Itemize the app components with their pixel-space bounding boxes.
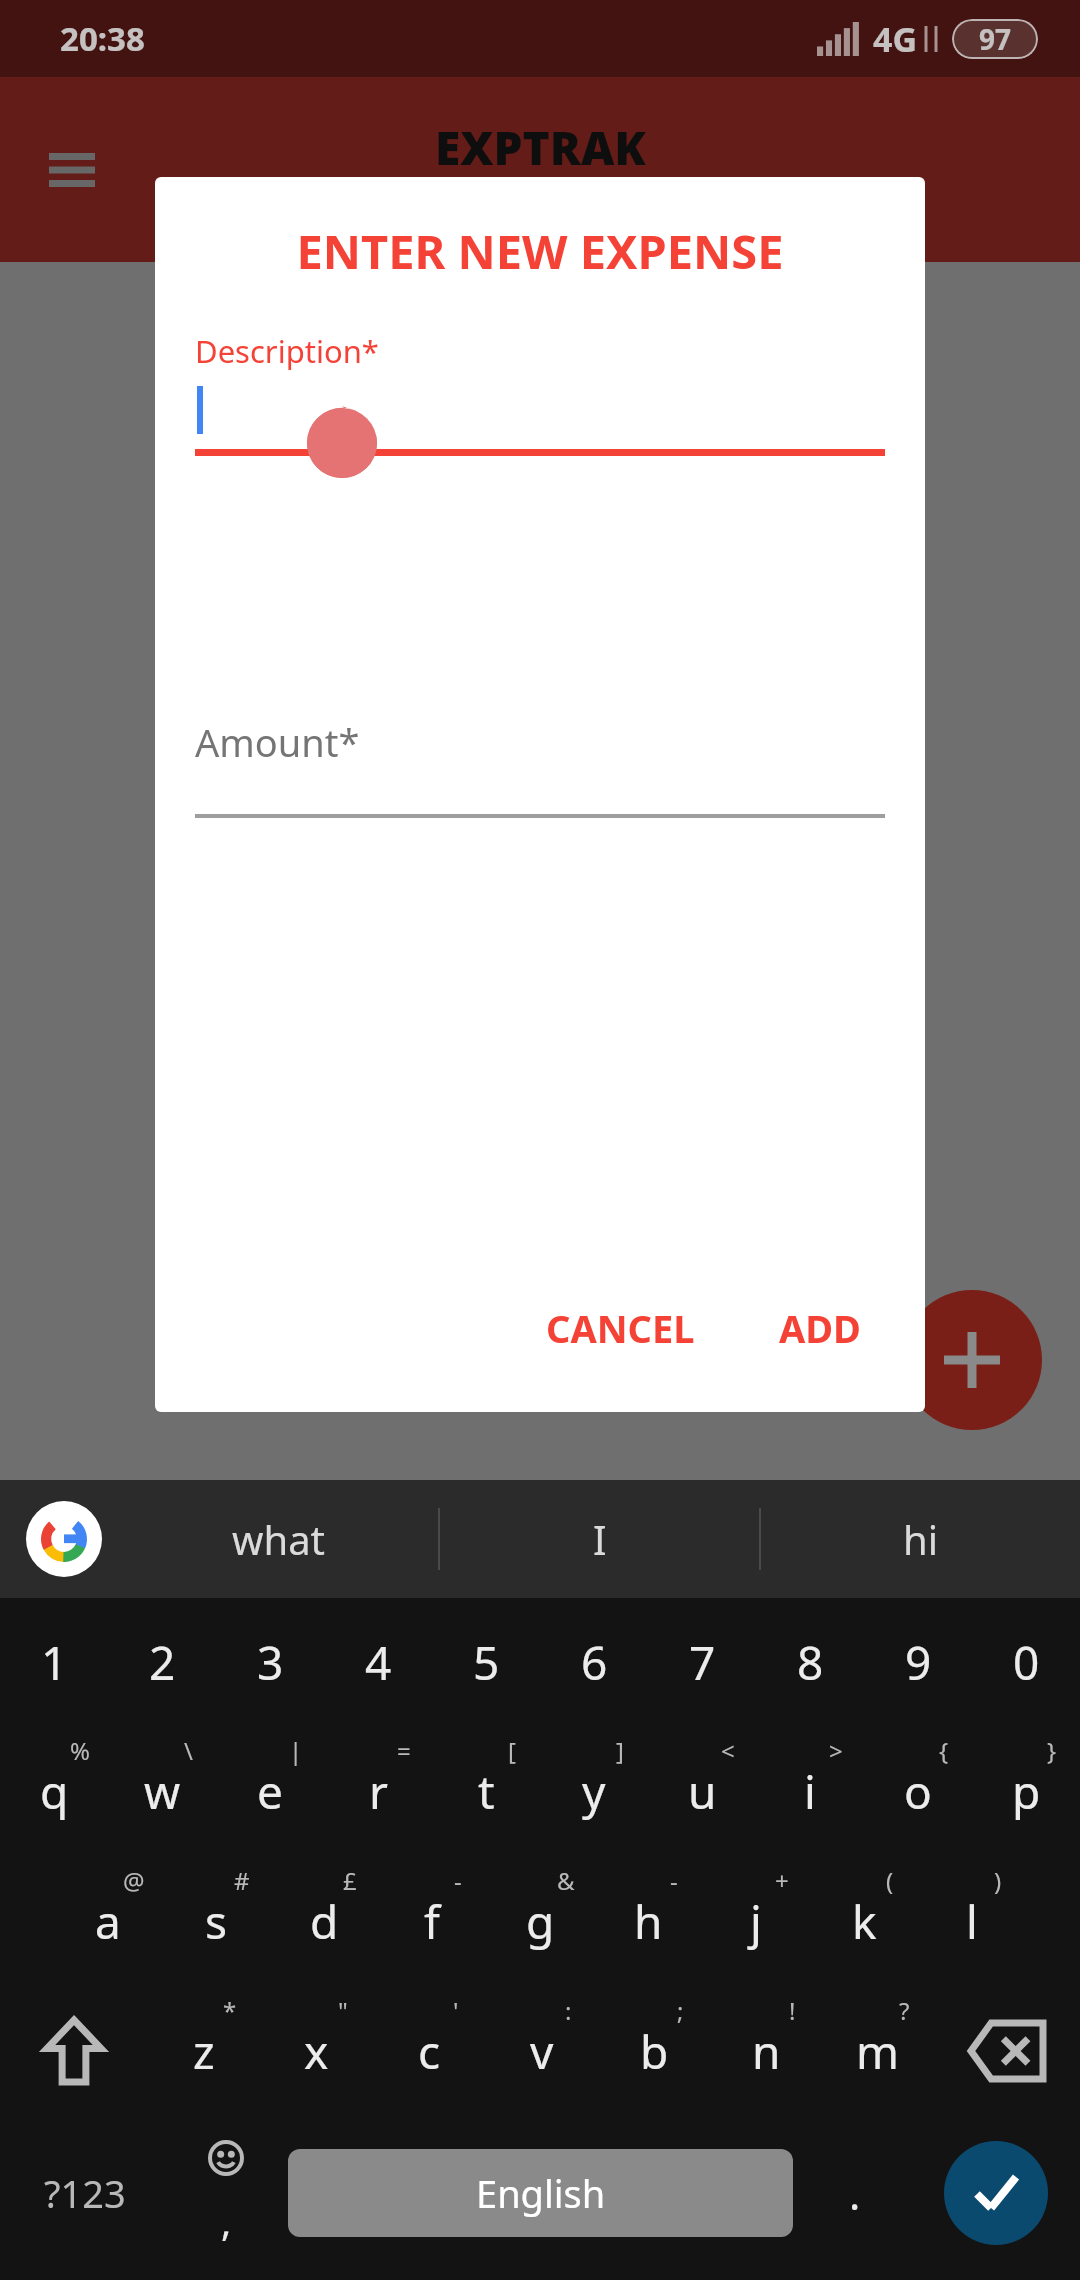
staticText: ]	[616, 1734, 624, 1767]
staticText: o	[904, 1760, 932, 1823]
staticText: hi	[903, 1512, 939, 1566]
staticText: 7	[689, 1631, 716, 1694]
staticText: =	[397, 1734, 411, 1767]
staticText: 9	[905, 1631, 932, 1694]
staticText: (	[886, 1864, 894, 1897]
staticText: 3	[257, 1631, 284, 1694]
button[interactable]: Backspace	[934, 1986, 1080, 2116]
button[interactable]: 7	[648, 1598, 756, 1726]
staticText: #	[234, 1864, 250, 1897]
staticText: s	[205, 1890, 228, 1953]
staticText: i	[804, 1760, 816, 1823]
staticText: 4	[365, 1631, 392, 1694]
staticText: -	[454, 1864, 462, 1897]
staticText: 1	[41, 1631, 68, 1694]
button[interactable]: Open navigation menu	[34, 132, 110, 208]
button[interactable]: p	[972, 1726, 1080, 1856]
button[interactable]: 5	[432, 1598, 540, 1726]
button[interactable]: .	[799, 2116, 911, 2270]
button[interactable]: hi	[761, 1480, 1080, 1598]
staticText: 0	[1013, 1631, 1040, 1694]
staticText: l	[966, 1890, 978, 1953]
staticText: z	[193, 2020, 215, 2083]
staticText: 8	[797, 1631, 824, 1694]
staticText: '	[453, 1994, 459, 2027]
staticText: EXPTRAK	[435, 116, 646, 179]
staticText: m	[856, 2020, 900, 2083]
staticText: v	[530, 2020, 554, 2083]
button[interactable]: 2	[108, 1598, 216, 1726]
button[interactable]: w	[108, 1726, 216, 1856]
button[interactable]: c	[373, 1986, 486, 2116]
button[interactable]: e	[216, 1726, 324, 1856]
staticText: f	[424, 1890, 440, 1953]
staticText: 4G	[873, 16, 918, 62]
button[interactable]: 6	[540, 1598, 648, 1726]
button[interactable]: x	[260, 1986, 373, 2116]
button[interactable]: English	[288, 2149, 793, 2237]
button[interactable]: Add expense	[902, 1290, 1042, 1430]
staticText: q	[40, 1760, 69, 1823]
staticText: 97	[979, 20, 1012, 58]
staticText: +	[775, 1864, 789, 1897]
button[interactable]: u	[648, 1726, 756, 1856]
staticText: }	[1047, 1734, 1057, 1767]
staticText: -	[670, 1864, 678, 1897]
button[interactable]: q	[0, 1726, 108, 1856]
button[interactable]: z	[147, 1986, 260, 2116]
staticText: what	[232, 1512, 326, 1566]
staticText: t	[478, 1760, 495, 1823]
button[interactable]: n	[710, 1986, 822, 2116]
button[interactable]: b	[598, 1986, 710, 2116]
button[interactable]: a	[54, 1856, 162, 1986]
button[interactable]: i	[756, 1726, 864, 1856]
button[interactable]	[195, 386, 885, 464]
staticText: n	[752, 2020, 781, 2083]
button[interactable]: ADD	[757, 1286, 883, 1370]
button[interactable]: h	[594, 1856, 702, 1986]
staticText: &	[557, 1864, 575, 1897]
button[interactable]: m	[822, 1986, 934, 2116]
staticText: ,	[221, 2195, 232, 2247]
button[interactable]: o	[864, 1726, 972, 1856]
button[interactable]: Enter	[944, 2141, 1048, 2245]
button[interactable]: r	[324, 1726, 432, 1856]
button[interactable]: f	[378, 1856, 486, 1986]
button[interactable]: j	[702, 1856, 810, 1986]
staticText: <	[721, 1734, 735, 1767]
staticText: )	[994, 1864, 1002, 1897]
button[interactable]: y	[540, 1726, 648, 1856]
staticText: k	[852, 1890, 877, 1953]
button[interactable]: 3	[216, 1598, 324, 1726]
button[interactable]: 8	[756, 1598, 864, 1726]
staticText: [	[508, 1734, 516, 1767]
staticText: >	[829, 1734, 843, 1767]
button[interactable]: ?123	[0, 2116, 170, 2270]
staticText: x	[304, 2020, 329, 2083]
button[interactable]: k	[810, 1856, 918, 1986]
button[interactable]: Shift	[0, 1986, 147, 2116]
button[interactable]: I	[440, 1480, 759, 1598]
staticText: !	[789, 1994, 796, 2027]
button[interactable]: v	[486, 1986, 598, 2116]
button[interactable]: d	[270, 1856, 378, 1986]
button[interactable]: what	[120, 1480, 438, 1598]
staticText: w	[144, 1760, 181, 1823]
staticText: Description*	[195, 330, 379, 372]
button[interactable]: Emoji	[170, 2116, 282, 2270]
button[interactable]: 0	[972, 1598, 1080, 1726]
staticText: ?	[899, 1994, 910, 2027]
staticText: a	[95, 1890, 121, 1953]
button[interactable]: Google assistant	[26, 1501, 102, 1577]
button[interactable]: s	[162, 1856, 270, 1986]
staticText: b	[640, 2020, 669, 2083]
button[interactable]: 9	[864, 1598, 972, 1726]
staticText: 2	[149, 1631, 176, 1694]
button[interactable]: l	[918, 1856, 1026, 1986]
button[interactable]: 1	[0, 1598, 108, 1726]
button[interactable]: 4	[324, 1598, 432, 1726]
button[interactable]: g	[486, 1856, 594, 1986]
button[interactable]: CANCEL	[524, 1286, 717, 1370]
button[interactable]: t	[432, 1726, 540, 1856]
